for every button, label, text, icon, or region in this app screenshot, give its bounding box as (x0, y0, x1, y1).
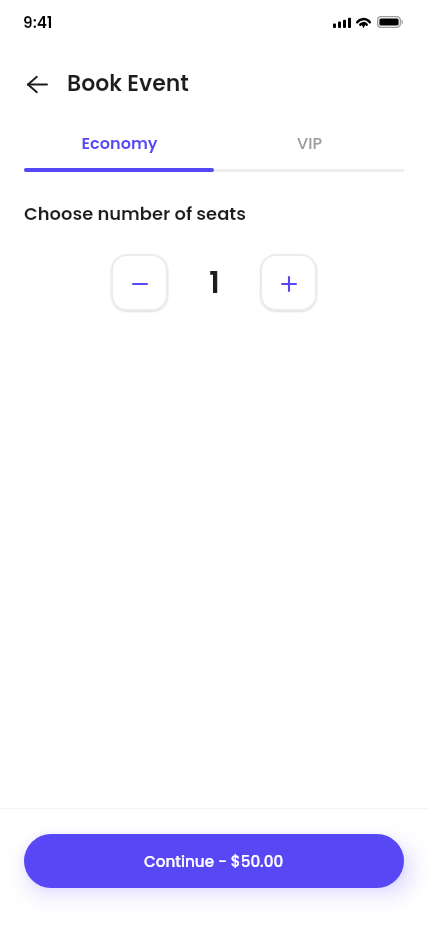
staticText: 9:41 (23, 12, 53, 34)
staticText: VIP (297, 132, 322, 155)
staticText: Book Event (67, 68, 189, 99)
button[interactable]: Increase seats (260, 254, 317, 311)
button[interactable]: Continue - $50.00 (24, 834, 404, 888)
staticText: Choose number of seats (24, 201, 246, 226)
button[interactable]: Decrease seats (111, 254, 168, 311)
button[interactable]: VIP (214, 114, 404, 168)
button[interactable]: Economy (24, 114, 214, 168)
staticText: Economy (81, 132, 158, 155)
staticText: Continue - $50.00 (144, 851, 284, 872)
staticText: 1 (209, 262, 220, 304)
button[interactable]: Back (17, 63, 57, 103)
